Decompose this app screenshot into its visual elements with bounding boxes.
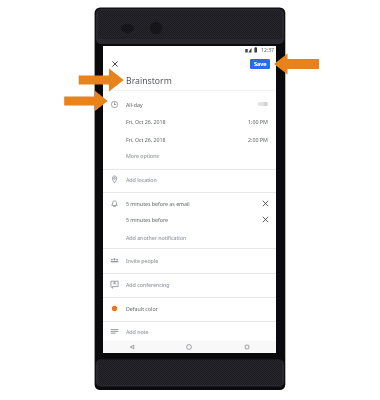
button[interactable]: Recent apps <box>218 341 276 353</box>
button[interactable]: Fri, Oct 26, 2018 <box>103 112 276 130</box>
button[interactable]: Default color <box>103 297 276 320</box>
staticText: Fri, Oct 26, 2018 <box>126 118 166 125</box>
button[interactable]: Add another notification <box>103 228 276 246</box>
button[interactable]: Save <box>250 59 270 69</box>
button[interactable]: Close <box>108 57 122 71</box>
staticText: Save <box>254 60 267 68</box>
staticText: Add note <box>126 328 149 335</box>
button[interactable]: Remove <box>260 214 271 225</box>
staticText: 1:00 PM <box>248 118 268 125</box>
button[interactable]: Add note <box>103 323 276 340</box>
staticText: Brainstorm <box>126 75 172 87</box>
staticText: 5 minutes before <box>126 216 169 223</box>
button[interactable]: Brainstorm <box>103 71 276 90</box>
button[interactable]: Home <box>160 341 218 353</box>
staticText: 5 minutes before as email <box>126 200 190 207</box>
button[interactable]: Invite people <box>103 249 276 272</box>
button[interactable]: All-day <box>103 95 276 113</box>
button[interactable]: 5 minutes before as email <box>103 195 276 212</box>
staticText: Add conferencing <box>126 281 170 288</box>
staticText: Invite people <box>126 257 159 264</box>
button[interactable]: Add location <box>103 168 276 191</box>
button[interactable]: Fri, Oct 26, 2018 <box>103 130 276 148</box>
button[interactable]: 5 minutes before <box>103 211 276 228</box>
staticText: Default color <box>126 305 158 312</box>
staticText: 12:37 <box>261 47 275 54</box>
staticText: More options <box>126 152 159 159</box>
staticText: 2:00 PM <box>248 136 268 143</box>
button[interactable]: Back <box>103 341 160 353</box>
button[interactable]: All-day toggle <box>256 99 270 109</box>
staticText: All-day <box>126 101 143 108</box>
staticText: Add another notification <box>126 234 187 241</box>
staticText: Fri, Oct 26, 2018 <box>126 136 166 143</box>
button[interactable]: More options <box>103 147 276 164</box>
button[interactable]: Remove <box>260 198 271 209</box>
staticText: Add location <box>126 176 157 183</box>
button[interactable]: Add conferencing <box>103 273 276 296</box>
